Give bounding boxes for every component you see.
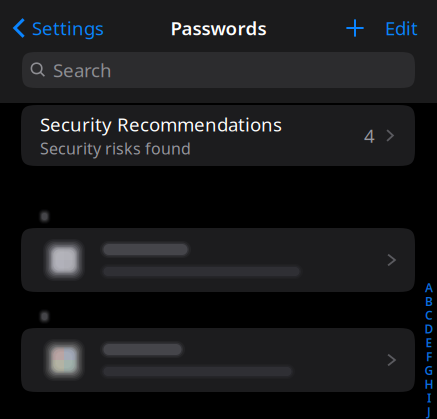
staticText: Edit bbox=[385, 16, 418, 40]
staticText: G bbox=[424, 362, 433, 378]
staticText: C bbox=[425, 307, 433, 323]
staticText: Passwords bbox=[170, 16, 266, 40]
staticText: I bbox=[427, 390, 431, 406]
staticText: D bbox=[424, 321, 433, 337]
staticText: Search bbox=[53, 58, 112, 82]
staticText: Security risks found bbox=[40, 138, 191, 159]
button[interactable]: Security Recommendations bbox=[21, 105, 415, 166]
staticText: H bbox=[424, 376, 433, 392]
button[interactable] bbox=[21, 328, 415, 392]
staticText: 4 bbox=[364, 123, 375, 148]
staticText: E bbox=[425, 335, 432, 351]
button[interactable]: Settings bbox=[0, 0, 114, 56]
staticText: F bbox=[426, 348, 432, 364]
staticText: Settings bbox=[32, 16, 104, 40]
staticText: A bbox=[425, 279, 433, 295]
staticText: J bbox=[427, 404, 431, 419]
button[interactable]: Add password bbox=[333, 0, 377, 56]
button[interactable]: Edit bbox=[364, 0, 437, 56]
button[interactable]: Section index bbox=[421, 283, 437, 416]
button[interactable] bbox=[21, 228, 415, 292]
staticText: B bbox=[425, 293, 433, 309]
staticText: Security Recommendations bbox=[40, 112, 282, 137]
